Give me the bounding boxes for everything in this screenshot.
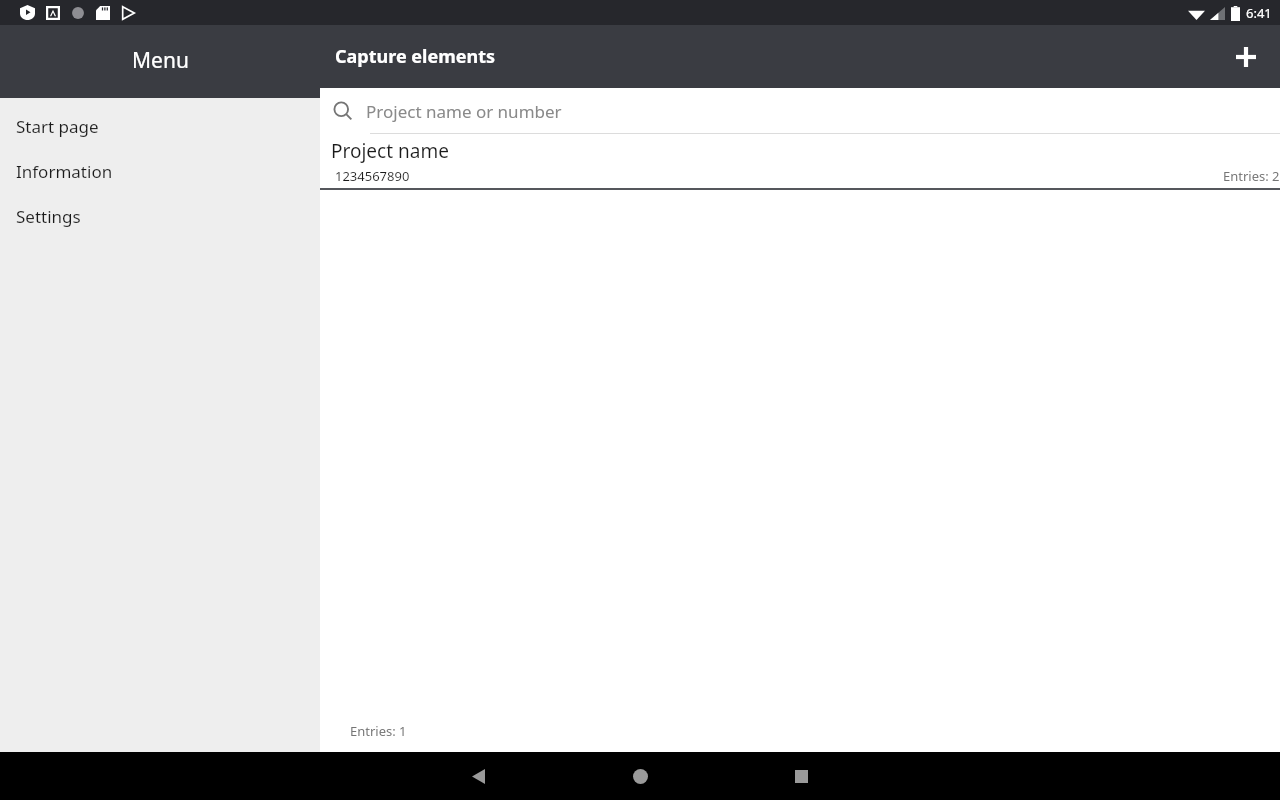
staticText: Capture elements xyxy=(335,44,496,69)
button[interactable]: Settings xyxy=(0,194,320,239)
staticText: 6:41 xyxy=(1246,4,1272,22)
staticText: Project name or number xyxy=(366,100,562,123)
button[interactable]: Home xyxy=(618,754,662,798)
button[interactable]: Back xyxy=(456,754,500,798)
button[interactable]: Start page xyxy=(0,104,320,149)
button[interactable]: Recent apps xyxy=(779,754,823,798)
staticText: Entries: 1 xyxy=(350,722,407,740)
staticText: Start page xyxy=(16,115,99,138)
staticText: Entries: 2 xyxy=(1223,167,1280,185)
staticText: Menu xyxy=(132,46,189,75)
staticText: Settings xyxy=(16,205,81,228)
staticText: Project name xyxy=(331,138,449,164)
button[interactable]: Project name or number xyxy=(320,88,1280,134)
staticText: 1234567890 xyxy=(335,167,410,185)
staticText: Information xyxy=(16,160,113,183)
button[interactable]: Project name xyxy=(320,134,1280,190)
button[interactable]: Add xyxy=(1224,35,1268,79)
button[interactable]: Information xyxy=(0,149,320,194)
